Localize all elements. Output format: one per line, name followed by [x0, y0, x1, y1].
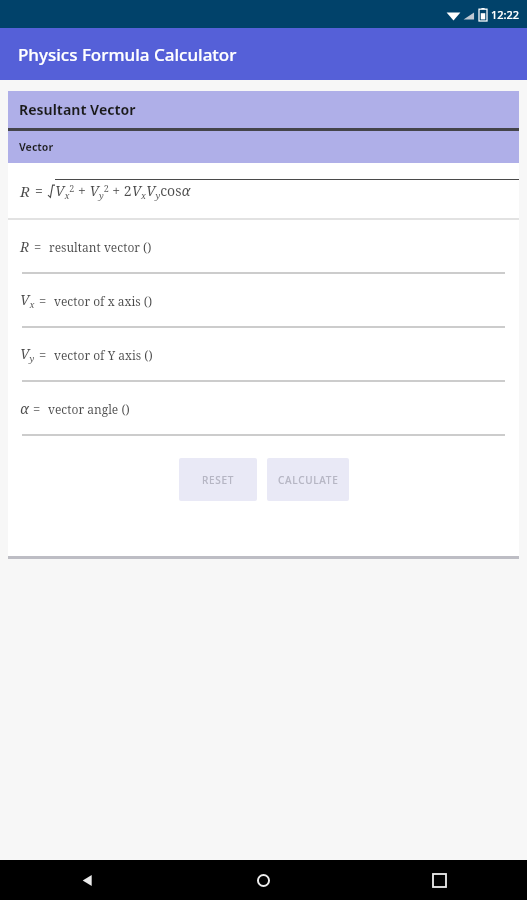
staticText: CALCULATE: [278, 473, 339, 487]
staticText: resultant vector (): [49, 239, 152, 255]
staticText: R: [20, 181, 30, 201]
staticText: vector of x axis (): [54, 293, 153, 309]
button[interactable]: Recent apps: [351, 860, 527, 900]
staticText: α: [20, 399, 29, 418]
staticText: Resultant Vector: [19, 100, 136, 119]
staticText: =: [39, 292, 47, 310]
staticText: Physics Formula Calculator: [18, 43, 237, 66]
staticText: R: [20, 237, 30, 256]
staticText: =: [33, 400, 41, 418]
staticText: 12:22: [491, 7, 520, 22]
button[interactable]: RESET: [179, 458, 257, 501]
staticText: =: [34, 238, 42, 256]
staticText: Vector: [19, 140, 54, 154]
button[interactable]: CALCULATE: [267, 458, 349, 501]
staticText: =: [35, 181, 43, 200]
button[interactable]: Back: [0, 860, 175, 900]
staticText: =: [39, 346, 47, 364]
staticText: Vy: [20, 344, 35, 365]
staticText: RESET: [202, 473, 235, 487]
staticText: Vx: [20, 290, 35, 311]
staticText: vector angle (): [48, 401, 130, 417]
staticText: vector of Y axis (): [54, 347, 153, 363]
staticText: Vx2 + Vy2 + 2VxVycosα: [55, 181, 191, 202]
button[interactable]: Home: [175, 860, 351, 900]
